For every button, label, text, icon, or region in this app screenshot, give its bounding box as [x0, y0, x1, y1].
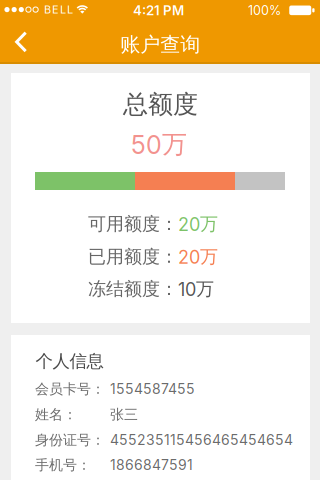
staticText: 20万	[178, 213, 218, 235]
staticText: 50万	[131, 129, 187, 160]
staticText: 账户查询	[120, 32, 200, 57]
staticText: 已用额度：	[88, 245, 178, 268]
staticText: BELL	[44, 3, 73, 16]
staticText: 总额度	[123, 89, 198, 120]
button[interactable]: Back	[1, 21, 41, 62]
staticText: 1866847591	[110, 456, 193, 473]
staticText: 个人信息	[35, 350, 103, 372]
staticText: 身份证号：	[35, 431, 105, 449]
staticText: 10万	[178, 278, 214, 300]
staticText: 张三	[110, 406, 138, 423]
staticText: 20万	[178, 245, 218, 268]
staticText: 455235115456465454654	[110, 431, 293, 448]
staticText: 冻结额度：	[88, 278, 178, 300]
staticText: 100%	[248, 3, 281, 18]
staticText: 4:21 PM	[133, 2, 184, 18]
staticText: 姓名：	[35, 406, 77, 423]
staticText: 1554587455	[110, 380, 195, 397]
staticText: 会员卡号：	[35, 380, 105, 398]
staticText: 可用额度：	[88, 213, 178, 235]
staticText: 手机号：	[35, 456, 91, 474]
